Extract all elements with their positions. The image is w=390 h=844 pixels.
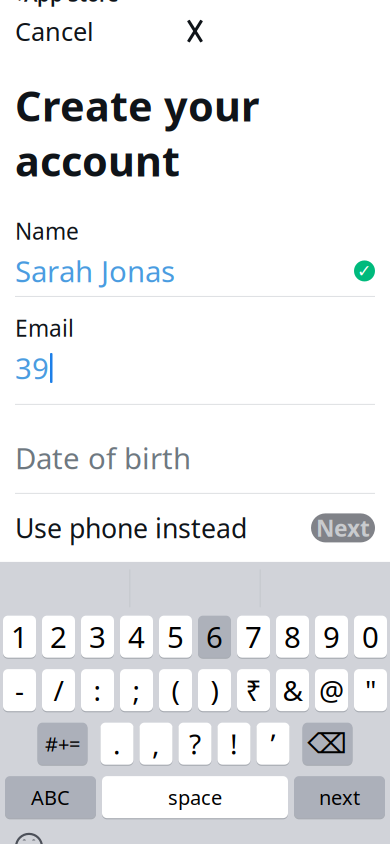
staticText: 2 <box>50 617 67 656</box>
button[interactable]: ; <box>120 668 153 712</box>
button[interactable]: Next <box>311 513 375 542</box>
staticText: ⌫ <box>307 728 347 759</box>
staticText: 3 <box>89 617 106 656</box>
button[interactable]: ₹ <box>237 668 270 712</box>
button[interactable]: : <box>81 668 114 712</box>
staticText: 0 <box>362 617 379 656</box>
staticText: ; <box>132 671 140 709</box>
button[interactable]: Cancel <box>0 6 109 56</box>
staticText: ( <box>171 671 179 709</box>
button[interactable]: " <box>354 668 387 712</box>
staticText: 4 <box>128 617 145 656</box>
button[interactable]: 4 <box>120 615 153 658</box>
staticText: #+= <box>45 730 80 757</box>
staticText: @ <box>319 671 344 709</box>
staticText: Email <box>15 313 74 343</box>
button[interactable]: - <box>3 668 36 712</box>
button[interactable]: @ <box>315 668 348 712</box>
staticText: " <box>365 671 376 709</box>
staticText: / <box>53 671 63 709</box>
button[interactable]: 2 <box>42 615 75 658</box>
staticText: next <box>319 784 360 810</box>
staticText: 39 <box>15 348 49 387</box>
button[interactable]: #+= <box>37 722 87 765</box>
button[interactable]: 0 <box>354 615 387 658</box>
staticText: Date of birth <box>15 438 191 477</box>
staticText: Cancel <box>15 14 94 48</box>
button[interactable]: 5 <box>159 615 192 658</box>
button[interactable]: ◀ <box>0 0 390 4</box>
button[interactable]: Use phone instead <box>15 510 247 546</box>
button[interactable]: / <box>42 668 75 712</box>
staticText: ₹ <box>245 671 261 709</box>
button[interactable]: Delete <box>302 722 352 765</box>
button[interactable]: space <box>102 775 288 819</box>
button[interactable]: Emoji <box>12 830 46 844</box>
button[interactable]: next <box>294 775 385 819</box>
staticText: 5 <box>167 617 184 656</box>
staticText: space <box>168 784 222 810</box>
button[interactable]: 6 <box>198 615 231 658</box>
button[interactable]: 1 <box>3 615 36 658</box>
staticText: ) <box>210 671 218 709</box>
staticText: Name <box>15 216 79 246</box>
button[interactable]: ’ <box>256 722 289 765</box>
button[interactable]: . <box>100 722 133 765</box>
button[interactable]: ) <box>198 668 231 712</box>
button[interactable]: 9 <box>315 615 348 658</box>
button[interactable]: , <box>139 722 172 765</box>
button[interactable]: 8 <box>276 615 309 658</box>
button[interactable]: ( <box>159 668 192 712</box>
staticText: : <box>93 671 101 709</box>
staticText: ’ <box>270 725 275 762</box>
button[interactable]: 7 <box>237 615 270 658</box>
button[interactable]: 3 <box>81 615 114 658</box>
staticText: ! <box>230 725 238 762</box>
staticText: Use phone instead <box>15 510 247 546</box>
staticText: 6 <box>206 617 223 656</box>
staticText: 1 <box>11 617 28 656</box>
staticText: , <box>152 725 160 762</box>
staticText: 9 <box>323 617 340 656</box>
button[interactable]: ABC <box>5 775 96 819</box>
staticText: ABC <box>31 784 70 810</box>
staticText: App Store <box>24 0 119 7</box>
staticText: 7 <box>245 617 262 656</box>
staticText: . <box>113 725 121 762</box>
button[interactable]: ? <box>178 722 211 765</box>
staticText: 8 <box>284 617 301 656</box>
staticText: Next <box>316 513 370 543</box>
staticText: ? <box>189 725 201 762</box>
staticText: Create your account <box>15 78 259 188</box>
staticText: - <box>15 671 24 709</box>
button[interactable]: ! <box>217 722 250 765</box>
staticText: Sarah Jonas <box>15 251 175 290</box>
staticText: ✓ <box>357 261 372 281</box>
staticText: ◀ <box>9 0 20 2</box>
button[interactable]: & <box>276 668 309 712</box>
staticText: & <box>282 671 302 709</box>
